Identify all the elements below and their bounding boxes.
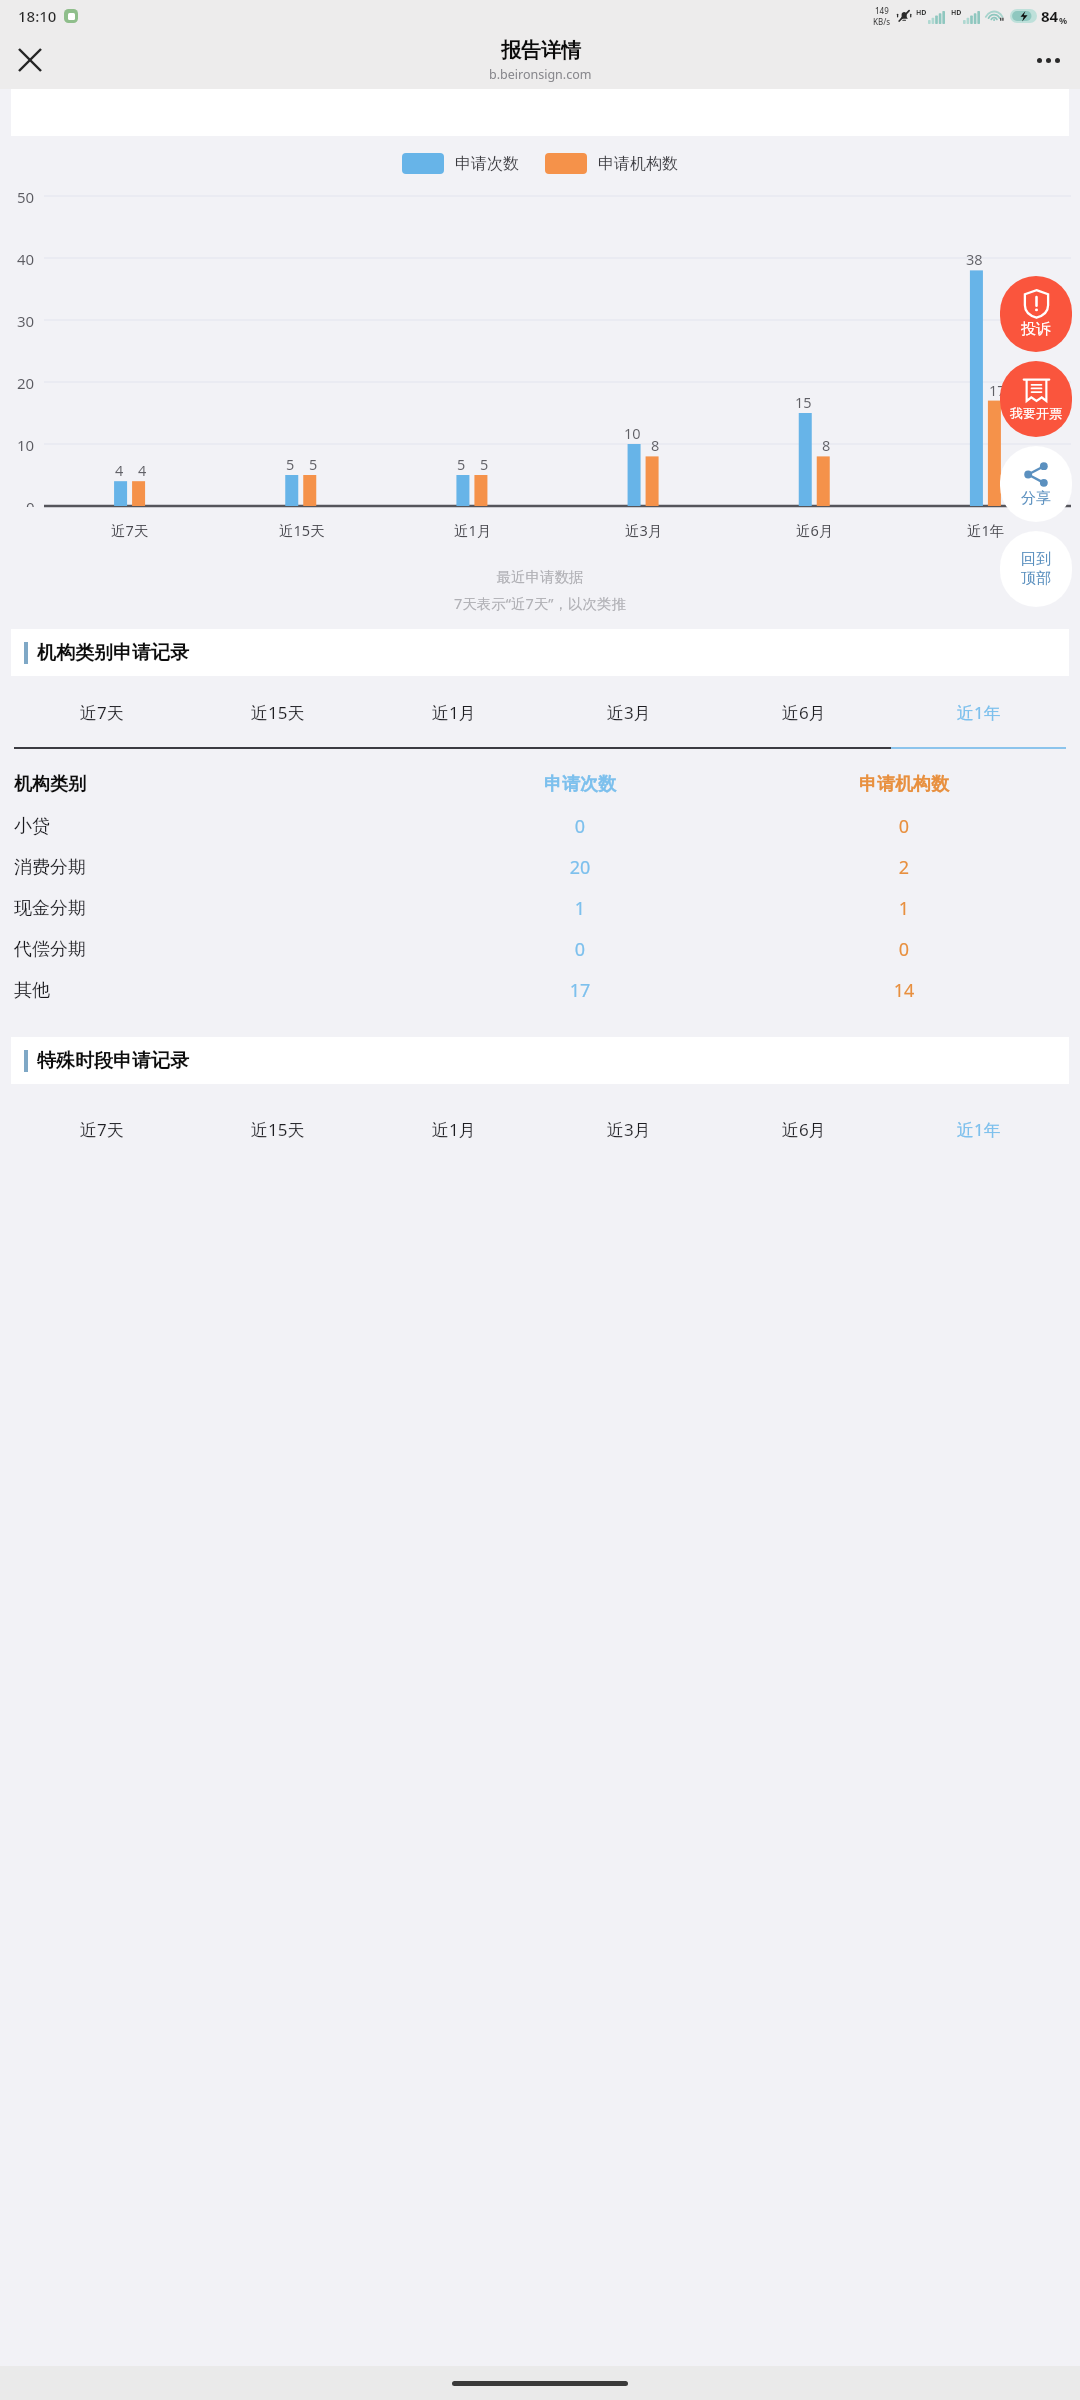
staticText: 7天表示“近7天”，以次类推 <box>0 593 1080 613</box>
staticText: 17 <box>418 978 742 1003</box>
staticText: 18:10 <box>18 6 57 26</box>
button[interactable]: 近3月 <box>541 694 716 731</box>
staticText: 机构类别 <box>14 773 418 796</box>
staticText: 5 <box>286 454 295 474</box>
staticText: 20 <box>418 855 742 880</box>
staticText: 1 <box>418 896 742 921</box>
staticText: 2 <box>742 855 1066 880</box>
staticText: 40 <box>17 249 35 269</box>
button[interactable]: 消费分期 <box>14 847 1066 888</box>
staticText: 0 <box>418 937 742 962</box>
button[interactable]: Request invoice <box>1000 361 1072 437</box>
staticText: 近3月 <box>625 520 663 540</box>
button[interactable]: 近1年 <box>891 1111 1066 1148</box>
staticText: 4 <box>115 460 124 480</box>
staticText: 84 <box>1041 6 1059 26</box>
button[interactable]: Back to top <box>1000 531 1072 607</box>
button[interactable]: 近1月 <box>366 1111 541 1148</box>
button[interactable]: 近7天 <box>14 694 190 731</box>
button[interactable]: 近1年 <box>891 694 1066 731</box>
staticText: 近3月 <box>607 701 651 724</box>
staticText: 消费分期 <box>14 856 418 879</box>
button[interactable]: 近6月 <box>716 694 891 731</box>
button[interactable]: 近3月 <box>541 1111 716 1148</box>
staticText: 10 <box>17 435 35 455</box>
staticText: 近3月 <box>607 1118 651 1141</box>
staticText: 近1年 <box>957 1118 1001 1141</box>
staticText: 特殊时段申请记录 <box>37 1049 189 1073</box>
staticText: 申请机构数 <box>598 154 678 174</box>
staticText: % <box>1059 14 1068 26</box>
staticText: 近15天 <box>279 520 325 540</box>
button[interactable]: 近15天 <box>190 1111 366 1148</box>
staticText: 我要开票 <box>1010 405 1062 421</box>
staticText: 5 <box>309 454 318 474</box>
staticText: 17 <box>989 380 1006 400</box>
button[interactable]: More options <box>1022 34 1074 86</box>
staticText: 近15天 <box>251 701 305 724</box>
staticText: 30 <box>17 311 35 331</box>
staticText: 现金分期 <box>14 897 418 920</box>
staticText: 近7天 <box>111 520 149 540</box>
staticText: 近1年 <box>967 520 1005 540</box>
staticText: 近7天 <box>80 701 124 724</box>
button[interactable]: 近15天 <box>190 694 366 731</box>
staticText: 最近申请数据 <box>0 568 1080 586</box>
staticText: 近1月 <box>432 1118 476 1141</box>
staticText: 4 <box>138 460 147 480</box>
staticText: 申请机构数 <box>742 773 1066 796</box>
button[interactable]: 其他 <box>14 970 1066 1011</box>
staticText: 分享 <box>1021 489 1051 508</box>
staticText: 0 <box>742 814 1066 839</box>
staticText: 15 <box>795 392 812 412</box>
staticText: 投诉 <box>1021 320 1051 339</box>
staticText: 申请次数 <box>455 154 519 174</box>
staticText: 14 <box>742 978 1066 1003</box>
staticText: 其他 <box>14 979 418 1002</box>
button[interactable]: 代偿分期 <box>14 929 1066 970</box>
button[interactable]: Complaint <box>1000 276 1072 352</box>
staticText: 近15天 <box>251 1118 305 1141</box>
staticText: 近1月 <box>454 520 492 540</box>
staticText: 38 <box>966 249 983 269</box>
staticText: 近6月 <box>796 520 834 540</box>
staticText: 机构类别申请记录 <box>37 641 189 665</box>
staticText: 10 <box>624 423 641 443</box>
staticText: 近7天 <box>80 1118 124 1141</box>
staticText: 149 <box>875 5 889 16</box>
staticText: 申请次数 <box>418 773 742 796</box>
button[interactable]: 小贷 <box>14 806 1066 847</box>
button[interactable]: Close <box>4 34 56 86</box>
button[interactable]: 现金分期 <box>14 888 1066 929</box>
staticText: HD <box>951 8 962 18</box>
staticText: 8 <box>822 435 831 455</box>
button[interactable]: Share <box>1000 446 1072 522</box>
staticText: 1 <box>742 896 1066 921</box>
staticText: 8 <box>651 435 660 455</box>
staticText: 50 <box>17 187 35 207</box>
staticText: HD <box>916 8 927 18</box>
staticText: 近1月 <box>432 701 476 724</box>
staticText: 近1年 <box>957 701 1001 724</box>
staticText: 0 <box>418 814 742 839</box>
staticText: 报告详情 <box>501 38 581 63</box>
staticText: 近6月 <box>782 1118 826 1141</box>
staticText: 近6月 <box>782 701 826 724</box>
staticText: KB/s <box>873 16 891 27</box>
staticText: 回到 <box>1021 550 1051 569</box>
staticText: 小贷 <box>14 815 418 838</box>
staticText: 0 <box>26 497 35 507</box>
staticText: 顶部 <box>1021 569 1051 588</box>
button[interactable]: 近7天 <box>14 1111 190 1148</box>
staticText: 5 <box>480 454 489 474</box>
staticText: 代偿分期 <box>14 938 418 961</box>
staticText: b.beironsign.com <box>489 66 592 83</box>
staticText: 0 <box>742 937 1066 962</box>
staticText: 20 <box>17 373 35 393</box>
button[interactable]: 近6月 <box>716 1111 891 1148</box>
button[interactable]: 近1月 <box>366 694 541 731</box>
staticText: 5 <box>457 454 466 474</box>
